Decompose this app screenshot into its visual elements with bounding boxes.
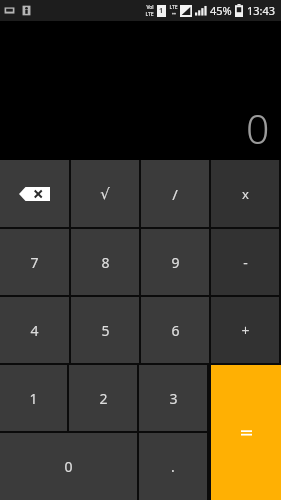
button[interactable]: 7 <box>0 229 69 295</box>
staticText: 45% <box>210 3 232 18</box>
staticText: 0 <box>64 457 73 476</box>
staticText: 2 <box>99 389 108 408</box>
button[interactable]: . <box>139 433 207 500</box>
button[interactable]: Equals <box>211 365 281 500</box>
button[interactable]: 4 <box>0 297 69 363</box>
staticText: 0 <box>246 100 270 156</box>
button[interactable]: 5 <box>71 297 139 363</box>
staticText: - <box>243 253 248 272</box>
staticText: . <box>171 457 175 476</box>
staticText: √ <box>100 185 110 202</box>
staticText: 6 <box>171 321 180 340</box>
button[interactable]: - <box>211 229 279 295</box>
staticText: •• <box>172 11 176 18</box>
button[interactable]: 2 <box>69 365 137 431</box>
button[interactable]: / <box>141 160 209 227</box>
staticText: 9 <box>171 253 180 272</box>
button[interactable]: 1 <box>0 365 67 431</box>
staticText: 4 <box>30 321 39 340</box>
button[interactable]: 9 <box>141 229 209 295</box>
staticText: 7 <box>30 253 39 272</box>
button[interactable]: 8 <box>71 229 139 295</box>
button[interactable]: 3 <box>139 365 207 431</box>
button[interactable]: x <box>211 160 279 227</box>
button[interactable]: √ <box>71 160 139 227</box>
staticText: 8 <box>101 253 110 272</box>
button[interactable]: Backspace <box>0 160 69 227</box>
button[interactable]: + <box>211 297 279 363</box>
button[interactable]: 6 <box>141 297 209 363</box>
staticText: 1 <box>29 389 38 408</box>
staticText: x <box>242 185 249 203</box>
staticText: LTE <box>169 4 178 11</box>
staticText: 1 <box>159 6 164 16</box>
staticText: + <box>241 321 250 340</box>
staticText: / <box>172 184 178 204</box>
staticText: Vol <box>146 4 154 11</box>
staticText: 5 <box>101 321 110 340</box>
staticText: LTE <box>145 11 154 18</box>
staticText: 13:43 <box>247 3 276 18</box>
button[interactable]: 0 <box>0 433 137 500</box>
staticText: 3 <box>169 389 178 408</box>
